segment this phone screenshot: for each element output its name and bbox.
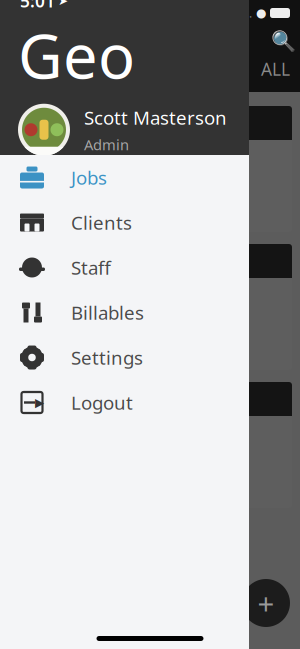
staticText: Billables xyxy=(71,300,144,325)
button[interactable]: Clients xyxy=(0,200,249,245)
button[interactable]: Search xyxy=(266,26,300,56)
staticText: Admin xyxy=(84,135,129,154)
staticText: 5:01 xyxy=(20,0,55,12)
staticText: Settings xyxy=(71,345,143,370)
staticText: .... xyxy=(240,5,252,21)
staticText: Scott Masterson xyxy=(84,105,227,130)
staticText: Logout xyxy=(71,390,133,415)
button[interactable]: Billables xyxy=(0,290,249,335)
staticText: ● xyxy=(256,6,266,20)
staticText: Geo xyxy=(18,14,135,96)
staticText: Clients xyxy=(71,210,132,235)
button[interactable]: Add xyxy=(242,579,290,627)
staticText: ALL xyxy=(261,57,290,80)
staticText: Jobs xyxy=(71,165,107,190)
staticText: Staff xyxy=(71,255,111,280)
button[interactable]: Settings xyxy=(0,335,249,380)
staticText: ➤ xyxy=(58,0,68,8)
button[interactable]: ▶ xyxy=(0,380,249,425)
staticText: ▶ xyxy=(35,396,44,409)
staticText: + xyxy=(257,583,274,622)
staticText: 🔍 xyxy=(270,30,295,52)
button[interactable]: Staff xyxy=(0,245,249,290)
button[interactable]: Jobs xyxy=(0,155,249,200)
button[interactable]: ALL xyxy=(261,57,300,80)
